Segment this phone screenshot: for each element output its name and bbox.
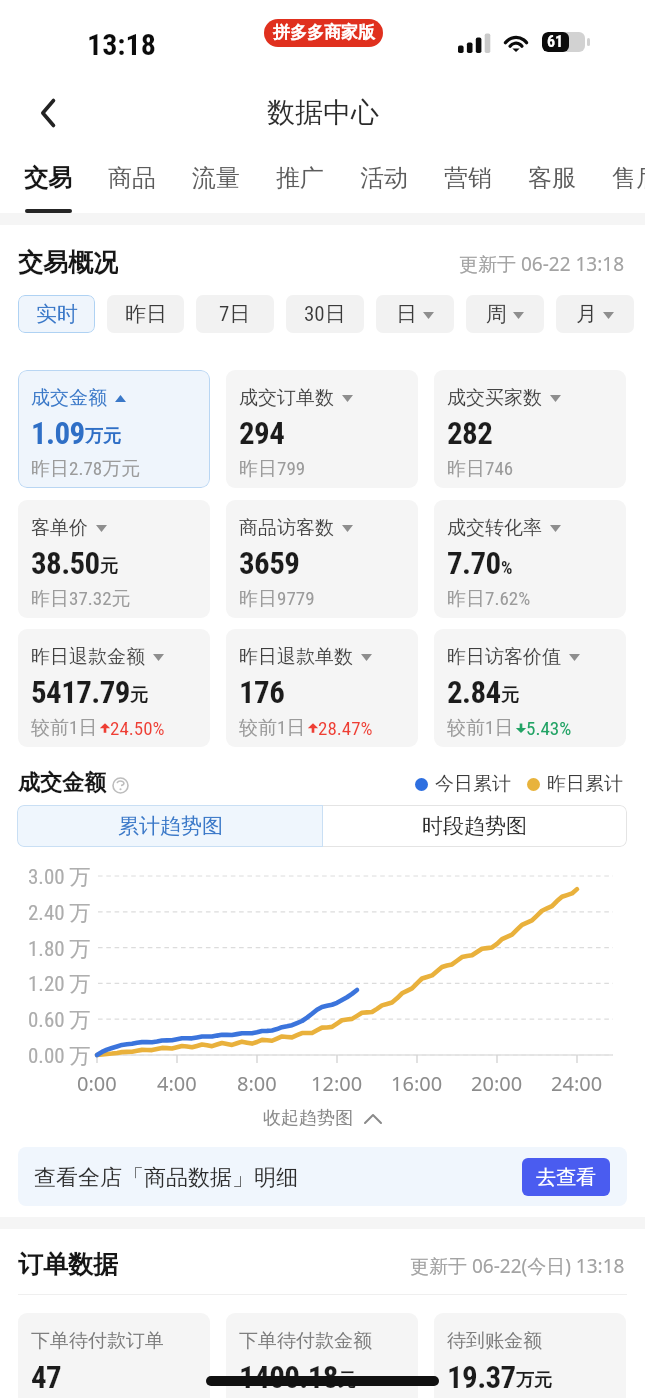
staticText: 昨日7.62% xyxy=(447,587,531,611)
staticText: 294 xyxy=(239,415,285,451)
staticText: 万元 xyxy=(516,1369,552,1392)
staticText: 营销 xyxy=(444,163,492,193)
staticText: 176 xyxy=(239,674,285,710)
button[interactable]: 下单待付款订单 xyxy=(18,1313,210,1398)
staticText: 客单价 xyxy=(31,516,88,540)
staticText: 昨日37.32元 xyxy=(31,587,131,611)
staticText: 流量 xyxy=(192,163,240,193)
button[interactable]: 累计趋势图 xyxy=(17,805,323,847)
staticText: 0:00 xyxy=(77,1070,117,1097)
staticText: 12:00 xyxy=(311,1070,363,1097)
staticText: 拼多多商家版 xyxy=(273,22,375,43)
staticText: 5.43% xyxy=(526,717,572,739)
button[interactable]: 营销 xyxy=(428,152,508,208)
button[interactable]: 推广 xyxy=(260,152,340,208)
staticText: 实时 xyxy=(36,301,78,327)
staticText: 成交转化率 xyxy=(447,516,542,540)
staticText: 昨日799 xyxy=(239,457,306,481)
staticText: 1.80 万 xyxy=(28,936,91,962)
staticText: 昨日退款单数 xyxy=(239,645,353,669)
staticText: 24.50% xyxy=(110,717,165,739)
button[interactable]: 昨日访客价值 xyxy=(434,629,626,747)
button[interactable]: 成交转化率 xyxy=(434,500,626,618)
staticText: 282 xyxy=(447,415,493,451)
staticText: 查看全店「商品数据」明细 xyxy=(34,1164,298,1192)
staticText: 元 xyxy=(501,684,519,707)
button[interactable]: Back xyxy=(22,87,74,139)
staticText: 元 xyxy=(100,555,118,578)
staticText: 47 xyxy=(31,1359,62,1395)
button[interactable]: 实时 xyxy=(18,295,95,333)
staticText: 售后 xyxy=(612,163,645,193)
staticText: 30日 xyxy=(304,301,346,327)
staticText: 0.60 万 xyxy=(28,1007,91,1033)
staticText: 61 xyxy=(547,32,564,51)
button[interactable]: 成交订单数 xyxy=(226,370,418,488)
staticText: 昨日累计 xyxy=(547,772,623,796)
button[interactable]: 客服 xyxy=(512,152,592,208)
staticText: 成交订单数 xyxy=(239,386,334,410)
button[interactable]: 商品访客数 xyxy=(226,500,418,618)
staticText: 待到账金额 xyxy=(447,1329,542,1353)
staticText: 客服 xyxy=(528,163,576,193)
button[interactable]: 昨日退款单数 xyxy=(226,629,418,747)
staticText: 数据中心 xyxy=(267,95,379,130)
staticText: 日 xyxy=(396,301,417,327)
button[interactable]: 商品 xyxy=(92,152,172,208)
button[interactable]: 昨日退款金额 xyxy=(18,629,210,747)
staticText: 交易概况 xyxy=(18,247,118,277)
button[interactable]: 昨日 xyxy=(107,295,184,333)
staticText: 商品访客数 xyxy=(239,516,334,540)
staticText: 16:00 xyxy=(391,1070,443,1097)
staticText: 昨日746 xyxy=(447,457,514,481)
button[interactable]: 成交买家数 xyxy=(434,370,626,488)
button[interactable]: 日 xyxy=(376,295,454,333)
staticText: 推广 xyxy=(276,163,324,193)
staticText: 2.40 万 xyxy=(28,900,91,926)
button[interactable]: 时段趋势图 xyxy=(322,805,627,847)
button[interactable]: 售后 xyxy=(596,152,645,208)
staticText: 成交买家数 xyxy=(447,386,542,410)
staticText: 昨日访客价值 xyxy=(447,645,561,669)
staticText: 较前1日 xyxy=(239,716,306,740)
staticText: 元 xyxy=(130,684,148,707)
staticText: 13:18 xyxy=(87,27,156,62)
button[interactable]: 30日 xyxy=(286,295,364,333)
staticText: 万元 xyxy=(85,425,121,448)
staticText: 8:00 xyxy=(237,1070,277,1097)
staticText: 昨日9779 xyxy=(239,587,315,611)
button[interactable]: 流量 xyxy=(176,152,256,208)
button[interactable]: 周 xyxy=(466,295,544,333)
staticText: 19.37 xyxy=(447,1359,516,1395)
button[interactable]: 客单价 xyxy=(18,500,210,618)
staticText: 周 xyxy=(486,301,507,327)
staticText: 3.00 万 xyxy=(28,864,91,890)
staticText: 1.20 万 xyxy=(28,971,91,997)
button[interactable]: 月 xyxy=(556,295,634,333)
button[interactable]: 7日 xyxy=(196,295,274,333)
staticText: 0.00 万 xyxy=(28,1043,91,1069)
button[interactable]: 成交金额 xyxy=(18,370,210,488)
staticText: 28.47% xyxy=(318,717,373,739)
staticText: 今日累计 xyxy=(435,772,511,796)
staticText: 昨日 xyxy=(125,301,167,327)
staticText: 7日 xyxy=(219,301,251,327)
button[interactable]: 交易 xyxy=(8,152,88,208)
staticText: 4:00 xyxy=(157,1070,197,1097)
staticText: 3659 xyxy=(239,545,300,581)
staticText: 去查看 xyxy=(536,1165,596,1190)
button[interactable]: 活动 xyxy=(344,152,424,208)
staticText: 较前1日 xyxy=(31,716,98,740)
staticText: 成交金额 xyxy=(18,769,106,797)
staticText: 活动 xyxy=(360,163,408,193)
staticText: % xyxy=(501,557,513,578)
staticText: 2.84 xyxy=(447,674,501,710)
button[interactable]: 待到账金额 xyxy=(434,1313,626,1398)
button[interactable]: 去查看 xyxy=(522,1158,610,1196)
staticText: 1.09 xyxy=(31,415,85,451)
staticText: 7.70 xyxy=(447,545,501,581)
button[interactable]: 收起趋势图 xyxy=(251,1103,394,1134)
staticText: 1400.18 xyxy=(239,1359,338,1395)
button[interactable]: 下单待付款金额 xyxy=(226,1313,418,1398)
staticText: 昨日2.78万元 xyxy=(31,457,141,481)
